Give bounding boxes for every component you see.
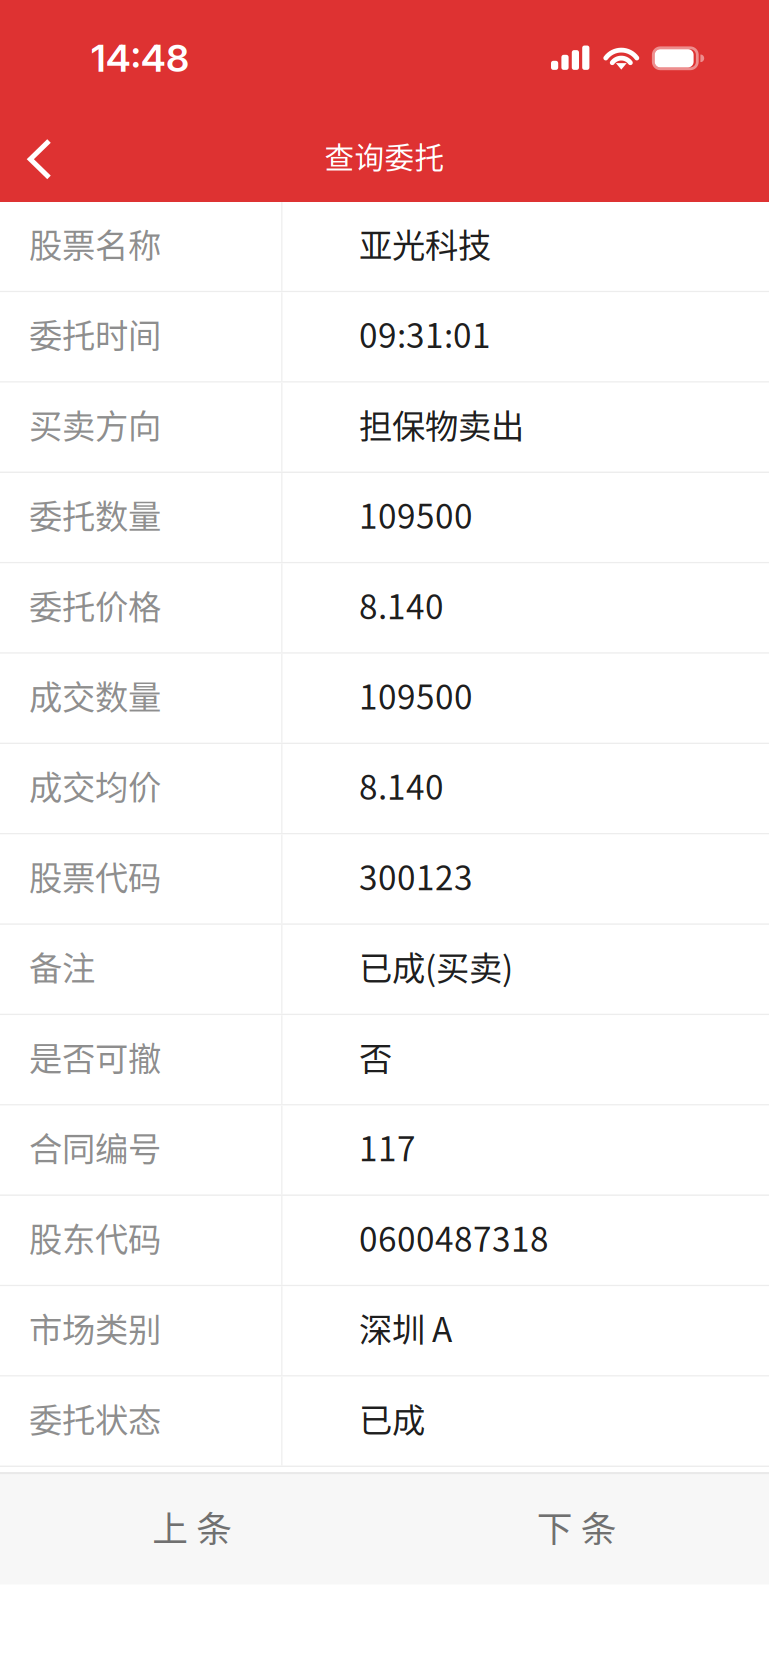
staticText: 否	[359, 1032, 392, 1081]
staticText: 买卖方向	[29, 400, 161, 448]
staticText: 担保物卖出	[359, 400, 524, 448]
staticText: 109500	[359, 490, 473, 538]
staticText: 市场类别	[29, 1303, 161, 1352]
staticText: 8.140	[359, 761, 444, 809]
staticText: 已成(买卖)	[359, 942, 513, 990]
button[interactable]: 上 条	[0, 1474, 384, 1584]
staticText: 合同编号	[29, 1123, 161, 1171]
button[interactable]: 下 条	[384, 1474, 769, 1584]
button[interactable]: Back	[0, 113, 74, 202]
staticText: 委托数量	[29, 490, 161, 538]
staticText: 股票名称	[29, 219, 161, 267]
staticText: 备注	[29, 942, 95, 990]
staticText: 股东代码	[29, 1213, 161, 1261]
staticText: 委托时间	[29, 309, 161, 358]
staticText: 是否可撤	[29, 1032, 161, 1081]
staticText: 查询委托	[324, 134, 444, 177]
staticText: 股票代码	[29, 852, 161, 900]
staticText: 委托状态	[29, 1394, 161, 1442]
staticText: 8.140	[359, 580, 444, 629]
staticText: 0600487318	[359, 1213, 549, 1261]
staticText: 成交数量	[29, 671, 161, 719]
staticText: 300123	[359, 852, 473, 900]
staticText: 117	[359, 1123, 416, 1171]
staticText: 14:48	[91, 35, 189, 81]
staticText: 已成	[359, 1394, 425, 1442]
staticText: 上 条	[152, 1501, 232, 1552]
staticText: 亚光科技	[359, 219, 491, 267]
staticText: 深圳 A	[359, 1303, 452, 1352]
staticText: 成交均价	[29, 761, 161, 809]
staticText: 09:31:01	[359, 309, 491, 358]
staticText: 委托价格	[29, 580, 161, 629]
staticText: 下 条	[537, 1501, 617, 1552]
staticText: 109500	[359, 671, 473, 719]
